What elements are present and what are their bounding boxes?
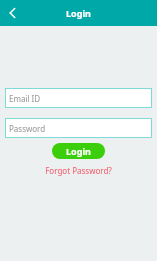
staticText: Email ID <box>9 93 41 104</box>
button[interactable]: Forgot Password? <box>41 164 116 177</box>
button[interactable]: Login <box>52 143 105 159</box>
button[interactable]: Email ID <box>5 88 152 108</box>
staticText: Forgot Password? <box>45 165 112 176</box>
staticText: Login <box>66 145 91 157</box>
button[interactable]: Back <box>0 0 26 26</box>
staticText: Password <box>9 123 46 134</box>
button[interactable]: Password <box>5 118 152 138</box>
staticText: Login <box>66 7 91 19</box>
